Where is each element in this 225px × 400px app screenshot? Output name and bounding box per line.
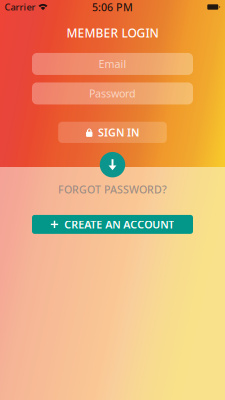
staticText: Carrier [4, 1, 35, 13]
button[interactable]: FORGOT PASSWORD? [58, 183, 167, 196]
staticText: Email [98, 57, 126, 71]
button[interactable]: CREATE AN ACCOUNT [32, 215, 193, 234]
staticText: 5:06 PM [92, 0, 133, 14]
staticText: FORGOT PASSWORD? [58, 182, 167, 197]
staticText: CREATE AN ACCOUNT [64, 217, 174, 231]
button[interactable]: SIGN IN [58, 122, 167, 143]
button[interactable]: Password [32, 82, 193, 104]
staticText: SIGN IN [98, 125, 139, 139]
staticText: MEMBER LOGIN [66, 25, 158, 41]
staticText: Password [89, 86, 136, 101]
button[interactable]: Email [32, 53, 193, 75]
button[interactable]: Scroll for more [100, 152, 125, 177]
